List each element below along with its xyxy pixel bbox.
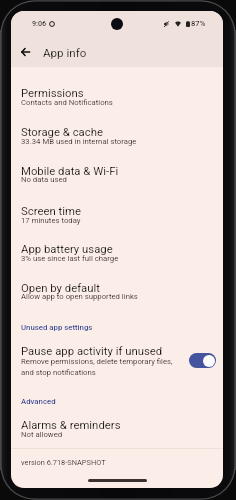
staticText: Not allowed — [21, 430, 63, 439]
button[interactable] — [11, 197, 223, 231]
button[interactable] — [11, 413, 223, 447]
staticText: Open by default — [21, 281, 101, 294]
staticText: No data used — [21, 175, 67, 184]
button[interactable] — [11, 79, 223, 113]
staticText: Unused app settings — [21, 323, 93, 332]
staticText: Contacts and Notifications — [21, 98, 113, 107]
button[interactable] — [11, 274, 223, 308]
staticText: Pause app activity if unused — [21, 344, 163, 357]
staticText: and stop notifications — [21, 368, 96, 377]
staticText: Permissions — [21, 86, 84, 99]
staticText: Mobile data & Wi-Fi — [21, 164, 119, 177]
staticText: version 6.718-SNAPSHOT — [21, 458, 106, 467]
button[interactable] — [11, 119, 223, 153]
staticText: Alarms & reminders — [21, 418, 121, 431]
staticText: Remove permissions, delete temporary fil… — [21, 357, 173, 366]
staticText: App info — [43, 46, 87, 60]
staticText: Screen time — [21, 204, 81, 217]
staticText: Storage & cache — [21, 125, 103, 138]
button[interactable] — [11, 235, 223, 269]
staticText: Allow app to open supported links — [21, 292, 138, 301]
button[interactable] — [11, 340, 223, 382]
staticText: App battery usage — [21, 242, 113, 255]
button[interactable] — [11, 157, 223, 191]
staticText: Advanced — [21, 397, 56, 406]
staticText: 33.34 MB used in internal storage — [21, 137, 137, 146]
staticText: 87% — [191, 19, 206, 28]
staticText: 3% use since last full charge — [21, 254, 119, 263]
staticText: 17 minutes today — [21, 216, 81, 225]
button[interactable]: Back — [11, 37, 40, 66]
staticText: 9:06 — [32, 19, 47, 27]
